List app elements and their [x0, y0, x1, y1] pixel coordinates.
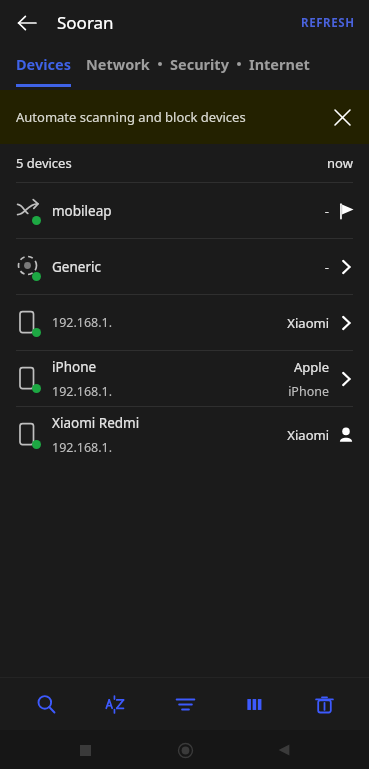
staticText: Xiaomi: [287, 314, 329, 332]
staticText: Network: [86, 54, 150, 74]
staticText: Internet: [249, 54, 310, 74]
staticText: -: [324, 258, 329, 276]
staticText: Automate scanning and block devices: [16, 108, 246, 126]
button[interactable]: Network: [86, 48, 150, 80]
button[interactable]: Delete: [300, 680, 348, 728]
staticText: 192.168.1.: [52, 383, 113, 400]
button[interactable]: Flag device: [331, 196, 361, 226]
button[interactable]: Xiaomi Redmi: [0, 407, 369, 462]
button[interactable]: Device details: [331, 252, 361, 282]
button[interactable]: Generic: [0, 239, 369, 294]
staticText: Xiaomi: [287, 426, 329, 444]
staticText: Devices: [16, 54, 72, 74]
staticText: iPhone: [288, 383, 329, 400]
staticText: 192.168.1.: [52, 439, 113, 456]
staticText: 5 devices: [16, 154, 72, 172]
staticText: Apple: [294, 358, 329, 376]
button[interactable]: Filter: [161, 680, 209, 728]
button[interactable]: Internet: [249, 48, 310, 80]
staticText: Sooran: [57, 11, 114, 34]
button[interactable]: Security: [170, 48, 229, 80]
staticText: Security: [170, 54, 229, 74]
staticText: REFRESH: [301, 15, 355, 31]
button[interactable]: Search: [22, 680, 70, 728]
button[interactable]: Device details: [331, 364, 361, 394]
button[interactable]: mobileap: [0, 183, 369, 238]
button[interactable]: 192.168.1.: [0, 295, 369, 350]
staticText: iPhone: [52, 358, 97, 376]
button[interactable]: Device owner: [331, 420, 361, 450]
staticText: mobileap: [52, 202, 112, 220]
button[interactable]: iPhone: [0, 351, 369, 406]
staticText: Xiaomi Redmi: [52, 414, 140, 432]
staticText: now: [327, 154, 353, 172]
button[interactable]: Back: [8, 4, 46, 42]
staticText: Generic: [52, 258, 101, 276]
button[interactable]: Devices: [16, 48, 72, 80]
button[interactable]: Columns: [230, 680, 278, 728]
button[interactable]: REFRESH: [287, 5, 369, 41]
button[interactable]: Dismiss: [323, 98, 361, 136]
staticText: 192.168.1.: [52, 314, 113, 331]
button[interactable]: Sort A to Z: [91, 680, 139, 728]
staticText: -: [324, 202, 329, 220]
button[interactable]: Device details: [331, 308, 361, 338]
